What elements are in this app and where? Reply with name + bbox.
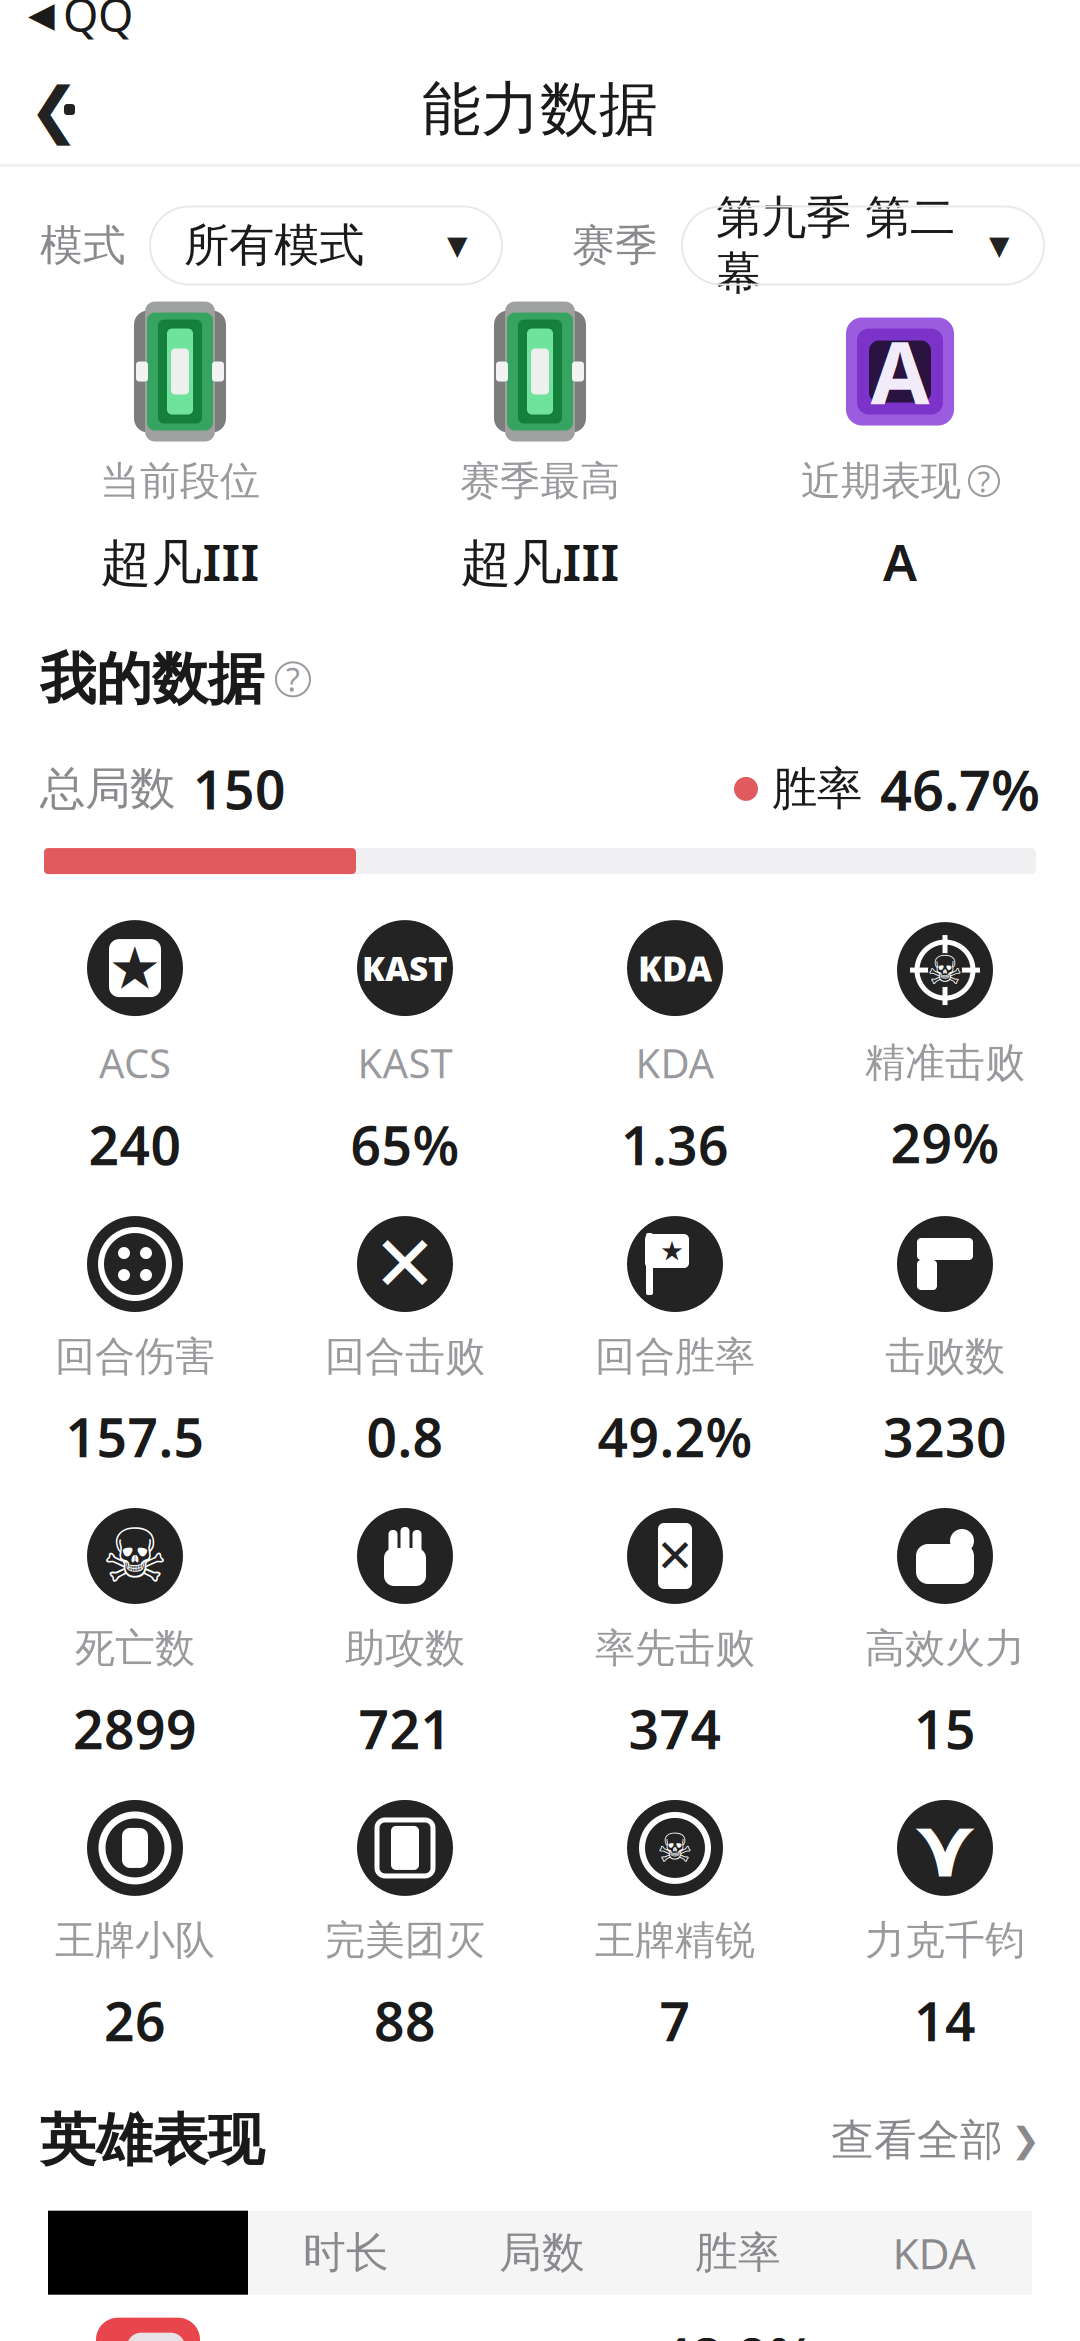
staticText: 2899 (73, 1693, 197, 1764)
staticText: 15 (914, 1693, 976, 1764)
staticText: ❯ (1011, 2121, 1040, 2160)
staticText: 374 (628, 1693, 721, 1764)
staticText: 1.36 (621, 1109, 729, 1180)
staticText: ACS (99, 1036, 171, 1089)
staticText: 率先击败 (595, 1624, 755, 1673)
button[interactable]: ☠ (540, 1800, 810, 2056)
staticText: 240 (88, 1109, 181, 1180)
staticText: 王牌小队 (55, 1916, 215, 1965)
staticText: ☠ (101, 1514, 168, 1598)
button[interactable]: 所有模式 (150, 206, 502, 284)
button[interactable]: ★ (0, 920, 270, 1180)
staticText: 赛季 (572, 219, 658, 272)
button[interactable]: ★ (540, 1216, 810, 1472)
staticText: ? (286, 658, 300, 701)
staticText: ☠ (657, 1825, 693, 1871)
staticText: 26 (104, 1985, 166, 2056)
button[interactable]: 返回 (24, 79, 84, 139)
staticText: ◀ (28, 0, 55, 34)
staticText: 0.8 (366, 1401, 443, 1472)
button[interactable]: 助攻数 (270, 1508, 540, 1764)
staticText: 英雄表现 (40, 2106, 264, 2175)
staticText: ✕ (372, 1220, 437, 1308)
button[interactable]: 第九季 第二幕 (682, 206, 1044, 284)
button[interactable]: ✕ (270, 1216, 540, 1472)
staticText: 胜率 (695, 2226, 781, 2279)
staticText: 完美团灭 (325, 1916, 485, 1965)
staticText: 157.5 (65, 1401, 204, 1472)
staticText: 7 (659, 1985, 690, 2056)
staticText: 胜率 (772, 761, 862, 817)
staticText: 14 (914, 1985, 976, 2056)
staticText: ⋎ (911, 1801, 978, 1895)
button[interactable]: 查看全部 (831, 2114, 1040, 2166)
staticText: ▼ (989, 230, 1010, 261)
button[interactable]: ✕ (540, 1508, 810, 1764)
staticText: 超凡III (460, 528, 619, 595)
staticText: 721 (358, 1693, 451, 1764)
staticText: ? (977, 462, 990, 501)
staticText: ❮ (28, 75, 79, 144)
staticText: 助攻数 (345, 1624, 465, 1673)
button[interactable]: ☠ (0, 1508, 270, 1764)
staticText: ✕ (656, 1530, 694, 1582)
staticText: 近期表现 (801, 456, 961, 506)
staticText: 3230 (883, 1401, 1007, 1472)
staticText: 回合击败 (325, 1332, 485, 1381)
staticText: 回合胜率 (595, 1332, 755, 1381)
staticText: KDA (635, 1036, 714, 1089)
staticText: 第九季 第二幕 (716, 190, 955, 301)
staticText: 48.9% (660, 2321, 815, 2341)
staticText: 回合伤害 (55, 1332, 215, 1381)
staticText: 总局数 (40, 761, 175, 817)
staticText: 击败数 (885, 1332, 1005, 1381)
staticText: ▼ (447, 230, 468, 261)
staticText: 局数 (499, 2226, 585, 2279)
button[interactable]: ⋎ (810, 1800, 1080, 2056)
button[interactable]: 完美团灭 (270, 1800, 540, 2056)
staticText: 王牌精锐 (595, 1916, 755, 1965)
button[interactable]: KDA (540, 920, 810, 1180)
button[interactable]: 回合伤害 (0, 1216, 270, 1472)
staticText: 65% (350, 1109, 459, 1180)
staticText: A (883, 528, 917, 595)
staticText: ★ (108, 935, 161, 1001)
button[interactable]: 25.6h (0, 2295, 1080, 2341)
staticText: KAST (362, 946, 448, 990)
staticText: 88 (374, 1985, 436, 2056)
staticText: 模式 (40, 219, 126, 272)
button[interactable]: 击败数 (810, 1216, 1080, 1472)
staticText: 时长 (303, 2226, 389, 2279)
staticText: KDA (892, 2224, 975, 2281)
staticText: 精准击败 (865, 1038, 1025, 1087)
staticText: 查看全部 (831, 2114, 1003, 2166)
staticText: A (870, 315, 929, 428)
staticText: 49.2% (597, 1401, 752, 1472)
staticText: ★ (660, 1236, 684, 1266)
staticText: 29% (890, 1107, 999, 1178)
staticText: 所有模式 (184, 218, 364, 273)
staticText: QQ (63, 0, 133, 44)
staticText: 死亡数 (75, 1624, 195, 1673)
staticText: 能力数据 (422, 73, 658, 146)
staticText: 力克千钧 (865, 1916, 1025, 1965)
staticText: KDA (638, 945, 712, 991)
staticText: 当前段位 (100, 456, 260, 506)
staticText: 150 (193, 753, 286, 824)
button[interactable]: ◀ (0, 0, 133, 48)
staticText: ☠ (927, 947, 963, 993)
button[interactable]: 高效火力 (810, 1508, 1080, 1764)
staticText: 高效火力 (865, 1624, 1025, 1673)
staticText: KAST (357, 1036, 452, 1089)
button[interactable]: KAST (270, 920, 540, 1180)
staticText: 赛季最高 (460, 456, 620, 506)
button[interactable]: ☠ (810, 922, 1080, 1178)
staticText: 46.7% (880, 752, 1040, 826)
staticText: 我的数据 (40, 645, 264, 714)
button[interactable]: 王牌小队 (0, 1800, 270, 2056)
staticText: 超凡III (100, 528, 259, 595)
